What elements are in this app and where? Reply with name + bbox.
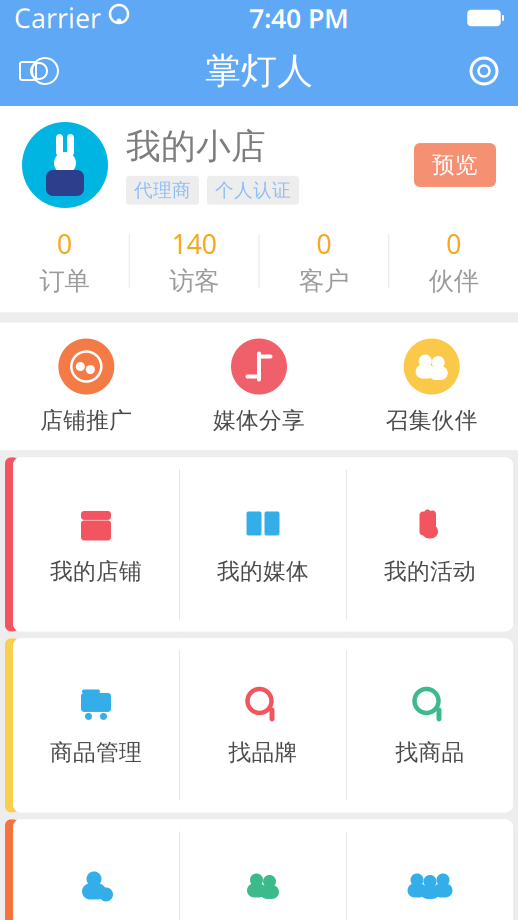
button[interactable]: 我的店铺 — [13, 457, 179, 631]
staticText: 我的媒体 — [217, 557, 309, 585]
button[interactable]: 我的媒体 — [180, 457, 346, 631]
staticText: 我的店铺 — [50, 557, 142, 585]
staticText: 客户 — [299, 265, 349, 296]
button[interactable]: 我的活动 — [347, 457, 513, 631]
button[interactable]: 我的客户 — [347, 819, 513, 920]
button[interactable]: 店铺推广 — [0, 322, 173, 450]
staticText: 7:40 PM — [249, 0, 349, 36]
button[interactable]: 0 — [0, 222, 129, 300]
staticText: 掌灯人 — [205, 49, 313, 93]
button[interactable]: 0 — [389, 222, 518, 300]
staticText: 找品牌 — [228, 738, 297, 766]
button[interactable]: 我的供货商 — [13, 819, 179, 920]
staticText: 召集伙伴 — [386, 406, 478, 434]
staticText: 0 — [446, 226, 461, 261]
staticText: 预览 — [432, 151, 478, 179]
button[interactable]: 找品牌 — [180, 638, 346, 812]
staticText: 140 — [172, 226, 217, 261]
button[interactable]: 我的伙伴 — [180, 819, 346, 920]
staticText: Carrier — [14, 0, 101, 36]
staticText: 0 — [57, 226, 72, 261]
button[interactable]: 0 — [259, 222, 388, 300]
button[interactable]: 召集伙伴 — [345, 322, 518, 450]
staticText: 媒体分享 — [213, 406, 305, 434]
staticText: 个人认证 — [215, 179, 291, 202]
staticText: 商品管理 — [50, 738, 142, 766]
button[interactable]: 商品管理 — [13, 638, 179, 812]
button[interactable]: 找商品 — [347, 638, 513, 812]
staticText: 我的小店 — [126, 125, 266, 168]
staticText: 代理商 — [134, 179, 191, 202]
button[interactable]: 预览 — [414, 143, 496, 187]
staticText: 订单 — [39, 265, 89, 296]
button[interactable]: Sound — [8, 45, 60, 97]
button[interactable]: 媒体分享 — [173, 322, 345, 450]
staticText: 店铺推广 — [40, 406, 132, 434]
button[interactable]: Settings — [458, 45, 510, 97]
button[interactable]: 140 — [130, 222, 259, 300]
staticText: 我的活动 — [384, 557, 476, 585]
staticText: 找商品 — [395, 738, 464, 766]
staticText: 访客 — [169, 265, 219, 296]
staticText: 伙伴 — [429, 265, 479, 296]
staticText: 0 — [316, 226, 331, 261]
